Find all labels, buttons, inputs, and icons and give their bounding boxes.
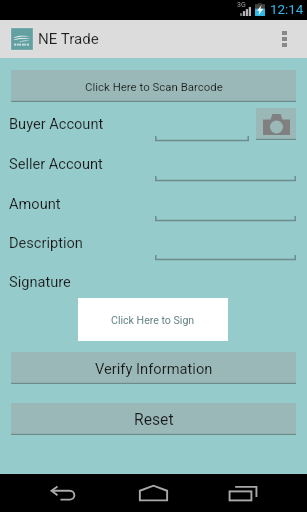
- staticText: 12:14: [270, 2, 304, 18]
- staticText: 3G: [237, 1, 246, 9]
- staticText: Description: [9, 234, 83, 251]
- staticText: Signature: [9, 273, 71, 290]
- staticText: NE Trade: [38, 30, 99, 48]
- button[interactable]: Recent apps: [203, 474, 284, 512]
- button[interactable]: Back: [23, 474, 104, 512]
- button[interactable]: Take photo: [256, 108, 296, 140]
- staticText: Click Here to Scan Barcode: [85, 80, 223, 93]
- button[interactable]: Click Here to Sign: [78, 298, 228, 341]
- button[interactable]: Click Here to Scan Barcode: [11, 70, 296, 102]
- button[interactable]: [155, 234, 296, 261]
- staticText: Click Here to Sign: [111, 314, 195, 326]
- button[interactable]: Home: [113, 474, 194, 512]
- button[interactable]: [155, 195, 296, 222]
- staticText: Verify Information: [95, 360, 213, 377]
- staticText: Seller Account: [9, 155, 103, 172]
- button[interactable]: Reset: [11, 403, 296, 435]
- button[interactable]: [155, 115, 249, 142]
- staticText: Buyer Account: [9, 115, 104, 132]
- staticText: Amount: [9, 195, 61, 212]
- button[interactable]: Verify Information: [11, 352, 296, 384]
- button[interactable]: [155, 155, 296, 182]
- button[interactable]: More options: [273, 20, 307, 58]
- staticText: Reset: [134, 410, 174, 428]
